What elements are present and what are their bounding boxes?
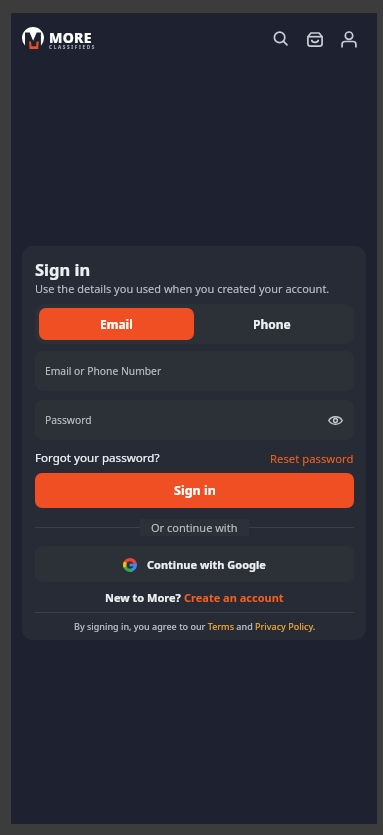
button[interactable]: Password	[35, 400, 354, 440]
button[interactable]: Email	[39, 308, 194, 340]
button[interactable]: Phone	[194, 308, 350, 340]
staticText: Or continue with	[151, 520, 238, 535]
staticText: New to More?	[105, 590, 184, 605]
staticText: Reset password	[270, 451, 354, 466]
staticText: Create an account	[184, 590, 284, 605]
button[interactable]: Create an account	[184, 590, 284, 605]
staticText: MORE	[49, 28, 92, 47]
button[interactable]: Cart	[303, 27, 326, 50]
staticText: Sign in	[35, 258, 91, 280]
button[interactable]: Show password	[326, 411, 344, 429]
button[interactable]: Account	[337, 27, 360, 50]
button[interactable]: Sign in	[35, 473, 354, 508]
button[interactable]: Continue with Google	[35, 546, 354, 582]
staticText: CLASSIFIEDS	[49, 44, 97, 50]
staticText: Email or Phone Number	[45, 364, 162, 378]
staticText: By signing in, you agree to our Terms an…	[74, 620, 316, 632]
staticText: Use the details you used when you create…	[35, 281, 330, 296]
staticText: Continue with Google	[147, 557, 266, 572]
staticText: Phone	[253, 316, 291, 332]
staticText: Forgot your password?	[35, 450, 160, 466]
button[interactable]: Email or Phone Number	[35, 351, 354, 391]
staticText: Sign in	[174, 482, 216, 499]
button[interactable]: Search	[269, 27, 292, 50]
staticText: Email	[100, 316, 133, 332]
button[interactable]: Reset password	[270, 451, 354, 466]
staticText: Password	[45, 413, 92, 427]
